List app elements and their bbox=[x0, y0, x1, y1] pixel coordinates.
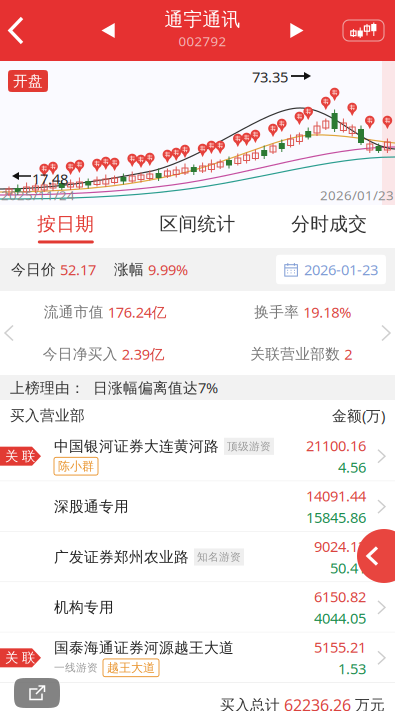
staticText: 换手率 bbox=[254, 303, 303, 321]
staticText: 73.35 bbox=[252, 67, 288, 86]
staticText: 顶级游资 bbox=[227, 440, 271, 453]
staticText: 机构专用 bbox=[54, 598, 114, 616]
staticText: 52.17 bbox=[60, 260, 96, 279]
staticText: 15845.86 bbox=[306, 508, 366, 527]
staticText: 国泰海通证券河源越王大道 bbox=[54, 639, 234, 657]
button[interactable]: Next stock bbox=[283, 0, 309, 61]
staticText: 17.48 bbox=[32, 169, 68, 188]
staticText: 176.24亿 bbox=[108, 302, 167, 322]
button[interactable]: Back bbox=[0, 0, 36, 61]
staticText: 6150.82 bbox=[314, 587, 366, 606]
button[interactable]: 广发证券郑州农业路 bbox=[0, 532, 395, 582]
staticText: 买入营业部 bbox=[10, 406, 85, 424]
staticText: 002792 bbox=[178, 32, 226, 50]
staticText: 买入总计 bbox=[220, 696, 284, 711]
button[interactable]: 机构专用 bbox=[0, 582, 395, 633]
staticText: 关联营业部数 bbox=[250, 345, 344, 363]
staticText: 14091.44 bbox=[306, 486, 366, 506]
button[interactable]: 区间统计 bbox=[132, 205, 263, 248]
staticText: 上榜理由： 日涨幅偏离值达7% bbox=[10, 378, 218, 397]
staticText: 中国银河证券大连黄河路 bbox=[54, 437, 219, 455]
staticText: 5155.21 bbox=[314, 637, 366, 657]
button[interactable]: 关 联 bbox=[0, 633, 395, 683]
button[interactable]: Previous stock bbox=[96, 0, 122, 61]
staticText: 知名游资 bbox=[197, 550, 241, 563]
staticText: 50.41 bbox=[330, 558, 366, 577]
button[interactable]: 2026-01-23 bbox=[276, 255, 386, 284]
staticText: 万元 bbox=[351, 696, 385, 711]
button[interactable]: 按日期 bbox=[0, 205, 132, 248]
staticText: 9024.13 bbox=[314, 536, 366, 556]
button[interactable]: Chart type bbox=[343, 20, 384, 41]
staticText: 2026-01-23 bbox=[304, 260, 378, 279]
staticText: 62236.26 bbox=[284, 694, 351, 711]
button[interactable]: 分时成交 bbox=[263, 205, 395, 248]
staticText: 2026/01/23 bbox=[320, 186, 394, 204]
staticText: 19.18% bbox=[303, 302, 351, 322]
staticText: 2 bbox=[344, 344, 352, 364]
staticText: 今日价 bbox=[11, 260, 60, 278]
staticText: 分时成交 bbox=[291, 212, 367, 235]
staticText: 关 联 bbox=[5, 650, 35, 666]
staticText: 区间统计 bbox=[159, 212, 235, 235]
staticText: 流通市值 bbox=[44, 303, 108, 321]
button[interactable]: 深股通专用 bbox=[0, 481, 395, 532]
staticText: 开盘 bbox=[13, 72, 43, 90]
staticText: 一线游资 bbox=[54, 661, 98, 674]
staticText: 今日净买入 bbox=[43, 345, 122, 363]
staticText: 4.56 bbox=[338, 457, 366, 477]
button[interactable]: Show related bbox=[357, 529, 395, 583]
button[interactable]: Share bbox=[14, 678, 60, 708]
staticText: 4044.05 bbox=[314, 608, 366, 628]
staticText: 按日期 bbox=[37, 212, 94, 235]
staticText: 陈小群 bbox=[58, 459, 94, 473]
staticText: 通宇通讯 bbox=[164, 8, 240, 31]
staticText: 9.99% bbox=[148, 260, 188, 279]
staticText: 1.53 bbox=[338, 659, 366, 678]
staticText: 越王大道 bbox=[107, 660, 155, 675]
staticText: 广发证券郑州农业路 bbox=[54, 548, 189, 566]
staticText: 2.39亿 bbox=[122, 344, 165, 364]
staticText: 2025/11/24 bbox=[1, 186, 75, 204]
staticText: 21100.16 bbox=[306, 436, 366, 455]
staticText: 关 联 bbox=[5, 448, 35, 464]
staticText: 涨幅 bbox=[114, 260, 148, 278]
staticText: 金额(万) bbox=[332, 406, 385, 425]
staticText: 深股通专用 bbox=[54, 498, 129, 516]
button[interactable]: 关 联 bbox=[0, 431, 395, 481]
